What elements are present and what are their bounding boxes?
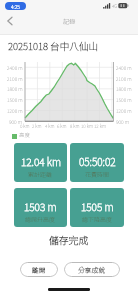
- staticText: 2400 m: [116, 64, 132, 71]
- button[interactable]: [2, 14, 18, 28]
- staticText: 8 km: [70, 123, 80, 130]
- staticText: 高度: [19, 131, 31, 139]
- button[interactable]: 分享成就: [64, 262, 120, 277]
- staticText: 分享成就: [78, 265, 106, 275]
- staticText: 4 km: [45, 123, 55, 130]
- button[interactable]: 1503 m: [14, 188, 67, 227]
- staticText: 1503 m: [24, 199, 57, 214]
- staticText: 4G: [112, 3, 118, 9]
- staticText: 900 m: [116, 118, 130, 125]
- staticText: 10 km: [81, 123, 93, 130]
- staticText: 2 km: [32, 123, 42, 130]
- staticText: 2400 m: [7, 64, 23, 71]
- staticText: 離開: [32, 265, 46, 275]
- staticText: 12 km: [94, 123, 106, 130]
- staticText: 儲存完成: [49, 233, 89, 247]
- staticText: 2100 m: [7, 75, 23, 82]
- staticText: 0 km: [20, 123, 30, 130]
- staticText: 05:50:02: [79, 154, 116, 169]
- staticText: 4:25: [11, 3, 20, 10]
- staticText: 2100 m: [116, 75, 132, 82]
- staticText: 1800 m: [116, 85, 132, 92]
- staticText: 900 m: [9, 118, 23, 125]
- staticText: 總下降高度: [82, 215, 113, 224]
- staticText: 1505 m: [81, 199, 114, 214]
- button[interactable]: 離開: [20, 262, 58, 277]
- staticText: 6 km: [57, 123, 67, 130]
- staticText: 記錄: [63, 17, 76, 26]
- staticText: 12.04 km: [21, 154, 61, 169]
- staticText: 1500 m: [116, 96, 132, 103]
- staticText: 1800 m: [7, 85, 23, 92]
- button[interactable]: 12.04 km: [14, 143, 67, 182]
- staticText: 1500 m: [7, 96, 23, 103]
- staticText: 1200 m: [7, 107, 23, 114]
- button[interactable]: 05:50:02: [70, 143, 124, 182]
- button[interactable]: 1505 m: [70, 188, 124, 227]
- staticText: 花費時間: [85, 170, 110, 179]
- staticText: 累計距離: [28, 170, 53, 179]
- staticText: 1200 m: [116, 107, 132, 114]
- staticText: 20251018 台中八仙山: [8, 39, 99, 53]
- staticText: 總爬升高度: [25, 215, 56, 224]
